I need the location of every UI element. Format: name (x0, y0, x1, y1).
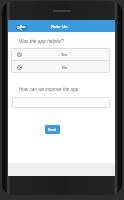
staticText: Back (20, 25, 26, 30)
staticText: How can we improve the app: (19, 87, 80, 92)
button[interactable]: Send (45, 125, 60, 134)
button[interactable]: No (11, 61, 110, 73)
staticText: Rate Us (51, 24, 68, 29)
staticText: Send (48, 128, 57, 132)
button[interactable] (12, 97, 110, 108)
button[interactable]: Back (16, 25, 27, 30)
staticText: No (62, 66, 67, 70)
button[interactable]: Yes (11, 48, 110, 60)
staticText: Yes (61, 53, 67, 57)
staticText: Was the app helpful? (19, 39, 64, 44)
